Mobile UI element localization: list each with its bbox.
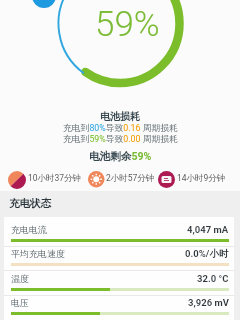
staticText: 充电电流: [11, 224, 47, 235]
staticText: 充电到59%导致0.00 周期损耗: [63, 134, 178, 145]
staticText: 32.0 °C: [197, 273, 229, 284]
staticText: 3,926 mV: [188, 297, 229, 308]
button[interactable]: 59%: [0, 0, 240, 191]
button[interactable]: 温度: [4, 266, 234, 290]
staticText: 59%: [95, 4, 160, 45]
staticText: 10小时37分钟: [28, 173, 82, 184]
staticText: 14小时9分钟: [177, 173, 226, 184]
staticText: 电压: [11, 297, 29, 308]
button[interactable]: 平均充电速度: [4, 241, 234, 265]
staticText: 0.0%/小时: [185, 248, 229, 260]
staticText: 温度: [11, 273, 29, 284]
button[interactable]: 电压: [4, 290, 234, 314]
staticText: 平均充电速度: [11, 248, 65, 259]
staticText: 电池剩余59%: [89, 150, 152, 163]
button[interactable]: 充电电流: [4, 217, 234, 241]
staticText: 2小时57分钟: [106, 173, 155, 184]
staticText: 电池损耗: [100, 110, 140, 123]
staticText: 4,047 mA: [187, 224, 229, 235]
staticText: 充电到80%导致0.16 周期损耗: [63, 123, 178, 134]
staticText: 充电状态: [9, 197, 51, 210]
